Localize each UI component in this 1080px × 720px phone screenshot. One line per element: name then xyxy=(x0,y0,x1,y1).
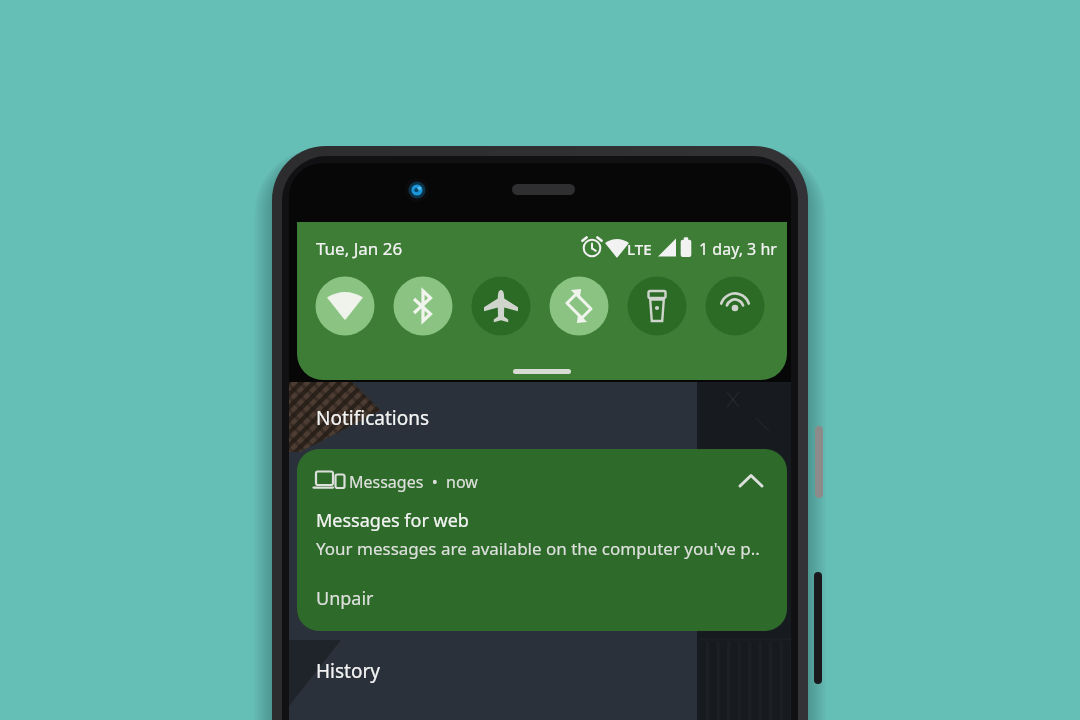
button[interactable]: Wi-Fi xyxy=(315,276,375,336)
staticText: Messages for web xyxy=(316,508,469,533)
button[interactable]: Auto-rotate xyxy=(549,276,609,336)
staticText: 1 day, 3 hr xyxy=(699,238,777,260)
staticText: LTE xyxy=(627,239,652,259)
staticText: Messages • now xyxy=(349,471,478,493)
staticText: Tue, Jan 26 xyxy=(316,237,403,260)
button[interactable]: Collapse notification xyxy=(729,459,773,503)
button[interactable]: Hotspot xyxy=(705,276,765,336)
button[interactable]: Unpair xyxy=(306,580,384,617)
button[interactable]: Bluetooth xyxy=(393,276,453,336)
staticText: Your messages are available on the compu… xyxy=(316,537,760,560)
button[interactable]: Flashlight xyxy=(627,276,687,336)
staticText: Notifications xyxy=(316,405,430,431)
button[interactable] xyxy=(297,449,787,631)
button[interactable]: Airplane mode xyxy=(471,276,531,336)
staticText: Unpair xyxy=(316,586,374,611)
staticText: History xyxy=(316,658,380,684)
